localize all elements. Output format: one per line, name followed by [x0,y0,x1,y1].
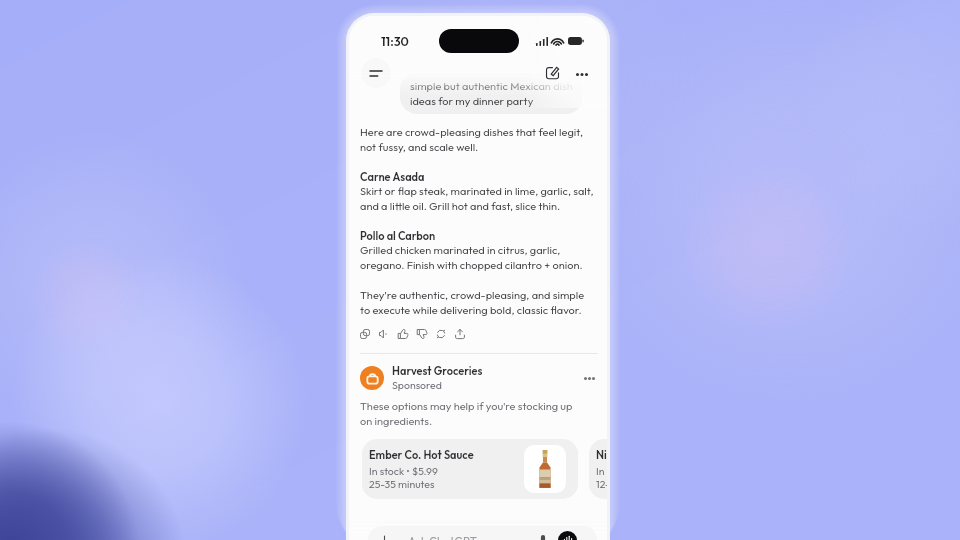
staticText: Skirt or flap steak, marinated in lime, … [360,184,594,213]
button[interactable]: Nixta Tortilla Co. [589,439,607,499]
staticText: Grilled chicken marinated in citrus, gar… [360,243,583,272]
staticText: simple but authentic Mexican dish ideas … [410,79,573,107]
button[interactable]: More [571,63,593,85]
staticText: In stock • $4.50 [596,464,607,477]
staticText: They're authentic, crowd-pleasing, and s… [360,288,585,317]
button[interactable]: Read aloud [379,325,398,342]
button[interactable]: Menu [361,58,391,88]
staticText: 11:30 [381,33,409,49]
button[interactable]: Attach [376,533,392,540]
staticText: Here are crowd-pleasing dishes that feel… [360,125,583,154]
button[interactable]: New chat [539,59,565,85]
button[interactable]: Good response [398,325,417,342]
button[interactable]: Regenerate [436,325,455,342]
button[interactable]: Ember Co. Hot Sauce [362,439,578,499]
staticText: Sponsored [392,378,442,391]
staticText: Ember Co. Hot Sauce [369,448,474,462]
button[interactable]: Share [455,325,474,342]
staticText: Ask ChatGPT [408,534,477,540]
button[interactable]: Bad response [417,325,436,342]
staticText: Nixta Tortilla Co. [596,448,607,462]
staticText: Carne Asada [360,170,425,184]
staticText: 12-20 minutes [596,477,607,490]
staticText: 25-35 minutes [369,477,435,490]
button[interactable]: More options [580,369,598,387]
button[interactable]: Dictate [535,533,551,540]
staticText: Pollo al Carbon [360,229,436,243]
button[interactable]: Voice mode [558,531,577,540]
staticText: In stock • $5.99 [369,464,438,477]
staticText: Harvest Groceries [392,364,483,378]
button[interactable]: Copy [360,325,379,342]
staticText: These options may help if you're stockin… [360,399,573,428]
